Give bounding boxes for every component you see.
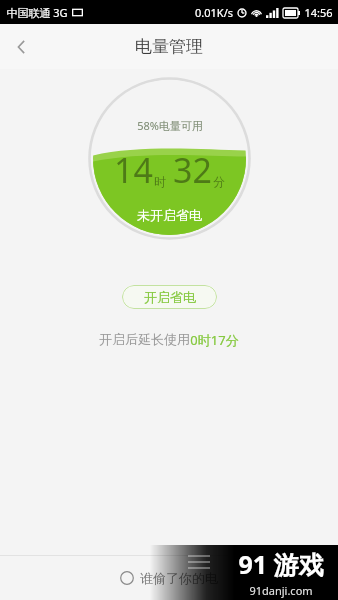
staticText: 32 <box>173 147 212 193</box>
staticText: 14 <box>114 147 153 193</box>
staticText: 未开启省电 <box>137 207 202 223</box>
staticText: 91danji.com <box>249 583 313 598</box>
staticText: 58%电量可用 <box>137 118 203 133</box>
staticText: 中国联通 3G <box>6 5 68 20</box>
staticText: 谁偷了你的电 <box>140 570 218 586</box>
staticText: 电量管理 <box>135 36 203 57</box>
staticText: 91 游戏 <box>238 547 324 581</box>
staticText: 时 <box>154 174 166 189</box>
staticText: 0.01K/s <box>195 5 233 20</box>
staticText: 14:56 <box>304 5 333 20</box>
staticText: 0时17分 <box>190 331 239 349</box>
button[interactable]: 谁偷了你的电 <box>0 556 338 600</box>
button[interactable]: Back <box>0 25 44 69</box>
staticText: 开启后延长使用 <box>99 331 190 347</box>
staticText: 分 <box>213 174 225 189</box>
staticText: 开启省电 <box>144 289 196 305</box>
button[interactable]: 开启省电 <box>122 285 217 309</box>
